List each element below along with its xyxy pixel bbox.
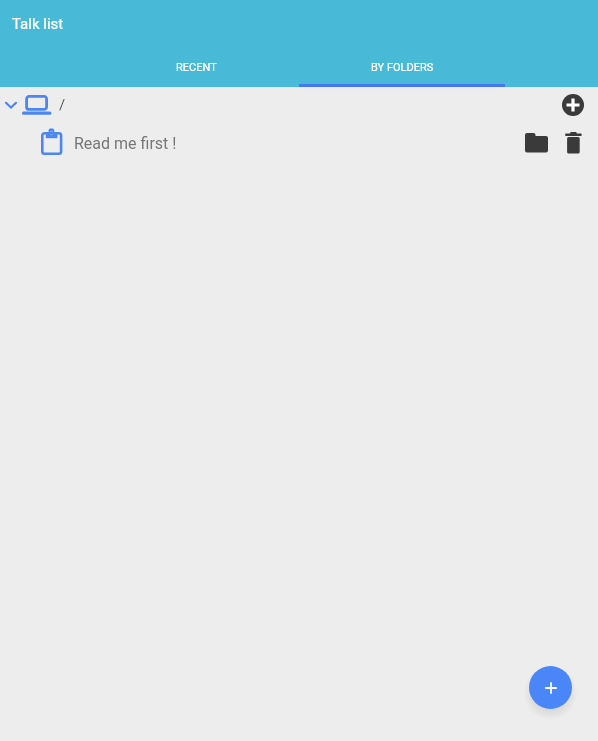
button[interactable] [529,666,572,709]
button[interactable]: BY FOLDERS [299,48,505,87]
staticText: Talk list [12,15,64,33]
button[interactable]: RECENT [93,48,299,87]
staticText: BY FOLDERS [371,61,434,74]
staticText: / [59,96,66,114]
button[interactable] [565,132,582,154]
button[interactable] [525,133,549,153]
staticText: Read me first ! [74,134,177,153]
button[interactable]: / [0,87,598,123]
button[interactable]: Read me first ! [0,123,598,163]
button[interactable] [562,94,584,116]
staticText: RECENT [176,61,217,74]
